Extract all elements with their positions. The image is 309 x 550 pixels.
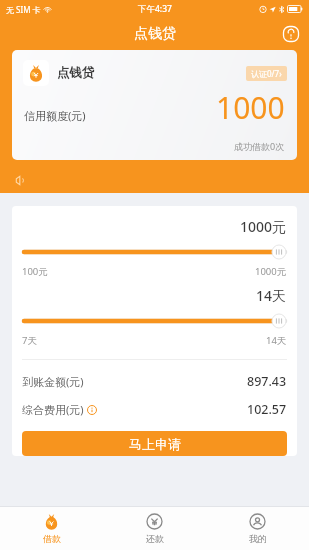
button[interactable] xyxy=(22,245,287,259)
button[interactable]: 还款 xyxy=(103,507,206,550)
staticText: 综合费用(元) xyxy=(22,402,84,417)
button[interactable] xyxy=(22,314,287,328)
staticText: 14天 xyxy=(256,286,287,305)
button[interactable]: Announcement xyxy=(13,175,24,186)
staticText: 马上申请 xyxy=(129,436,181,452)
staticText: 还款 xyxy=(146,533,164,544)
staticText: 我的 xyxy=(249,533,267,544)
button[interactable]: 认证0/7› xyxy=(246,66,287,81)
staticText: 100元 xyxy=(22,265,48,278)
staticText: 成功借款0次 xyxy=(234,140,285,152)
staticText: 897.43 xyxy=(247,373,287,390)
staticText: 1000元 xyxy=(240,217,287,236)
staticText: 认证0/7› xyxy=(251,68,282,79)
button[interactable]: Fee info xyxy=(87,405,97,415)
staticText: 到账金额(元) xyxy=(22,374,84,389)
button[interactable]: 我的 xyxy=(206,507,309,550)
button[interactable]: 借款 xyxy=(0,507,103,550)
staticText: 无 SIM 卡 xyxy=(6,4,41,15)
staticText: 7天 xyxy=(22,334,37,347)
staticText: 信用额度(元) xyxy=(24,108,86,123)
staticText: 14天 xyxy=(266,334,287,347)
staticText: 下午4:37 xyxy=(138,3,172,15)
staticText: 1000 xyxy=(216,87,285,128)
button[interactable]: Help xyxy=(282,25,300,43)
button[interactable]: 点钱贷 xyxy=(12,50,297,160)
button[interactable]: 马上申请 xyxy=(22,431,287,456)
staticText: 借款 xyxy=(43,533,61,544)
staticText: 102.57 xyxy=(247,401,287,418)
staticText: 点钱贷 xyxy=(57,65,95,81)
staticText: 点钱贷 xyxy=(134,25,176,43)
staticText: 1000元 xyxy=(255,265,287,278)
